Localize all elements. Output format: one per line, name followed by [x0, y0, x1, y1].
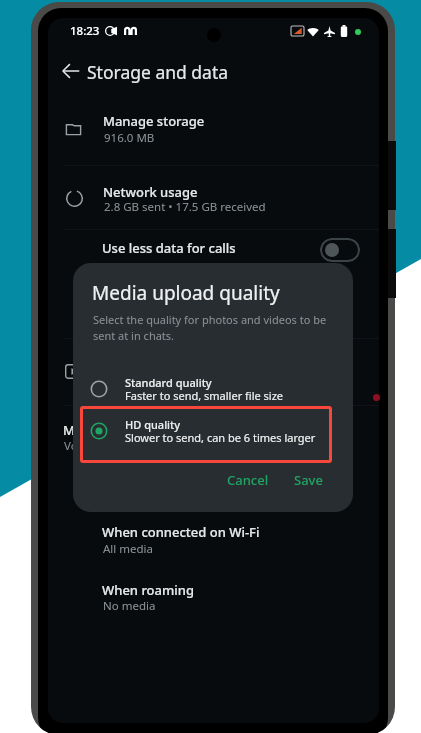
button[interactable]: Network usage [48, 166, 379, 228]
staticText: Manage storage [103, 112, 205, 130]
staticText: Select the quality for photos and videos… [93, 312, 327, 343]
staticText: Slower to send, can be 6 times larger [125, 430, 316, 445]
staticText: Media auto-download [63, 421, 199, 439]
staticText: When connected on Wi-Fi [102, 523, 260, 541]
staticText: When roaming [102, 581, 195, 599]
button[interactable]: When connected on Wi-Fi [48, 513, 379, 570]
staticText: Use less data for calls [102, 239, 236, 257]
staticText: Storage and data [87, 60, 229, 84]
button[interactable]: Back [52, 52, 90, 90]
button[interactable]: When roaming [48, 570, 379, 627]
button[interactable]: Use less data for calls toggle [318, 236, 362, 264]
staticText: 916.0 MB [104, 130, 155, 146]
staticText: All media [103, 541, 154, 557]
button[interactable] [73, 373, 353, 413]
staticText: Save [294, 471, 323, 489]
staticText: Faster to send, smaller file size [125, 388, 284, 403]
button[interactable]: Cancel [219, 465, 277, 495]
staticText: Network usage [103, 183, 198, 201]
staticText: Media upload quality [92, 280, 280, 306]
staticText: Cancel [227, 471, 269, 489]
staticText: 2.8 GB sent • 17.5 GB received [104, 199, 266, 215]
staticText: HD quality [104, 376, 161, 392]
staticText: Standard quality [125, 375, 212, 390]
staticText: HD quality [125, 417, 181, 432]
button[interactable]: Manage storage [48, 100, 379, 164]
staticText: Voice messages are always downloaded [64, 438, 280, 454]
button[interactable] [73, 415, 353, 455]
staticText: No media [103, 598, 156, 614]
button[interactable]: Use less data for calls [48, 230, 379, 275]
staticText: 18:23 [70, 23, 100, 39]
button[interactable]: Save [286, 465, 331, 495]
